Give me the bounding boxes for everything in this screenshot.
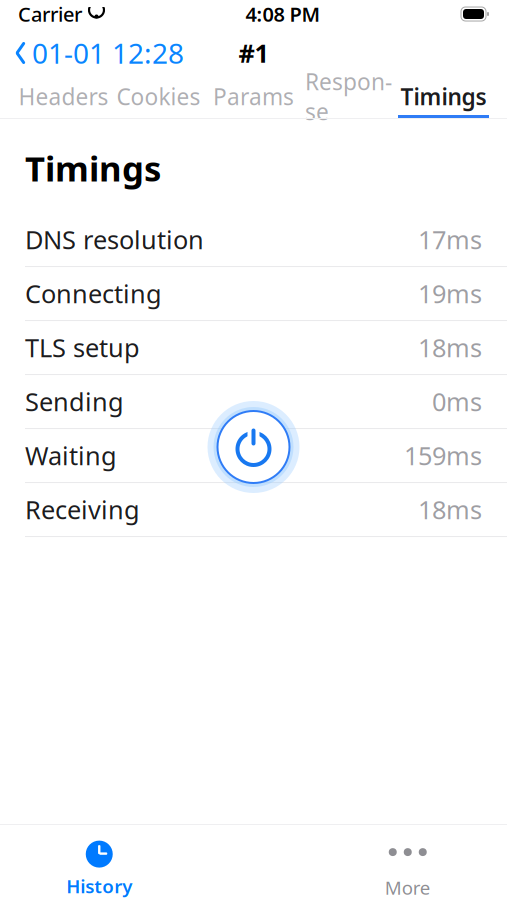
button[interactable]: 01-01 12:28 (0, 26, 198, 80)
button[interactable]: Timings (396, 78, 491, 118)
staticText: #1 (238, 36, 268, 70)
staticText: 4:08 PM (245, 1, 320, 27)
button[interactable]: Params (206, 78, 301, 118)
staticText: Cookies (116, 81, 200, 111)
staticText: 01-01 12:28 (32, 34, 184, 72)
staticText: Sending (25, 385, 124, 418)
button[interactable]: History (0, 835, 198, 900)
staticText: 17ms (418, 223, 482, 256)
button[interactable]: More (308, 833, 507, 900)
button[interactable]: Response (301, 78, 396, 118)
staticText: 19ms (418, 277, 482, 310)
staticText: Timings (25, 145, 161, 191)
staticText: Waiting (25, 439, 117, 472)
staticText: Carrier (18, 1, 82, 27)
staticText: 18ms (418, 331, 482, 364)
staticText: Connecting (25, 277, 162, 310)
staticText: Receiving (25, 493, 140, 526)
staticText: 0ms (432, 385, 482, 418)
staticText: Response (305, 66, 392, 127)
staticText: 159ms (404, 439, 482, 472)
button[interactable]: Cookies (111, 78, 206, 118)
staticText: More (385, 875, 431, 900)
staticText: Headers (18, 81, 108, 111)
staticText: Params (213, 81, 294, 111)
staticText: DNS resolution (25, 223, 204, 256)
staticText: History (66, 874, 132, 898)
button[interactable]: Start (203, 397, 303, 497)
button[interactable]: Headers (16, 78, 111, 118)
staticText: 18ms (418, 493, 482, 526)
staticText: TLS setup (25, 331, 140, 364)
staticText: Timings (400, 81, 486, 111)
